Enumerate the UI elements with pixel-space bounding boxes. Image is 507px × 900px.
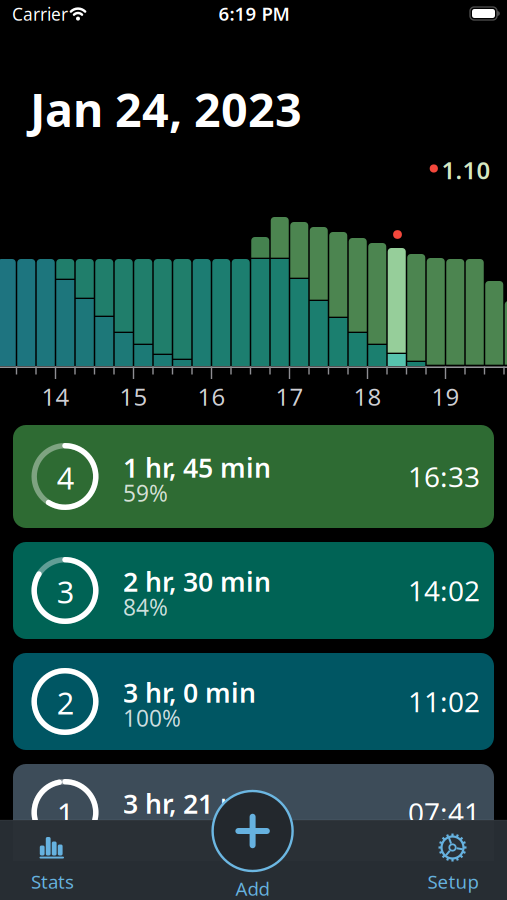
staticText: 1 hr, 45 min — [123, 450, 271, 485]
staticText: 07:41 — [408, 794, 480, 831]
button[interactable]: Stats — [0, 820, 105, 900]
staticText: Carrier — [12, 2, 68, 25]
button[interactable]: Setup — [402, 820, 507, 900]
staticText: 4 — [57, 457, 75, 498]
button[interactable]: 1 — [13, 764, 494, 861]
staticText: 3 hr, 21 min — [123, 786, 271, 821]
staticText: Add — [236, 876, 270, 900]
staticText: 14:02 — [408, 572, 480, 609]
staticText: 16 — [197, 381, 225, 412]
staticText: 18 — [353, 381, 381, 412]
staticText: 11:02 — [408, 683, 480, 720]
staticText: 1 — [57, 793, 75, 834]
staticText: Setup — [427, 869, 478, 894]
staticText: 14 — [41, 381, 69, 412]
button[interactable]: 3 — [13, 542, 494, 639]
button[interactable]: 4 — [13, 425, 494, 528]
staticText: Jan 24, 2023 — [30, 78, 302, 140]
staticText: 59% — [123, 478, 168, 508]
staticText: 3 hr, 0 min — [123, 675, 256, 710]
staticText: 1.10 — [441, 154, 490, 186]
staticText: 100% — [123, 703, 181, 733]
staticText: 97% — [123, 814, 168, 844]
staticText: 3 — [57, 571, 75, 612]
button[interactable]: Add — [210, 785, 295, 897]
staticText: 2 — [57, 682, 75, 723]
button[interactable]: 2 — [13, 653, 494, 750]
staticText: 84% — [123, 592, 168, 622]
staticText: 17 — [275, 381, 303, 412]
staticText: 19 — [431, 381, 459, 412]
staticText: Stats — [31, 869, 74, 894]
staticText: 6:19 PM — [218, 1, 289, 26]
staticText: 16:33 — [408, 458, 480, 495]
staticText: 15 — [119, 381, 147, 412]
staticText: 2 hr, 30 min — [123, 564, 271, 599]
